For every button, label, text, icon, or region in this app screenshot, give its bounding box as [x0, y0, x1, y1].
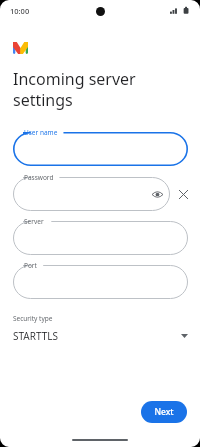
staticText: 10:00	[10, 6, 30, 16]
button[interactable]: Server	[13, 221, 188, 255]
staticText: Port	[24, 261, 37, 270]
button[interactable]: Clear password	[174, 185, 192, 203]
button[interactable]: User name	[13, 132, 188, 166]
staticText: STARTTLS	[13, 329, 181, 343]
staticText: Next	[154, 406, 174, 418]
staticText: Security type	[13, 314, 53, 323]
button[interactable]: Show password	[150, 187, 164, 201]
staticText: Password	[24, 173, 54, 182]
button[interactable]: Password	[13, 177, 170, 211]
staticText: User name	[24, 128, 58, 137]
button[interactable]: Port	[13, 265, 188, 299]
button[interactable]: Security type	[0, 314, 200, 343]
button[interactable]: Next	[141, 401, 187, 423]
staticText: Server	[24, 217, 44, 226]
staticText: Incoming server settings	[13, 68, 136, 111]
